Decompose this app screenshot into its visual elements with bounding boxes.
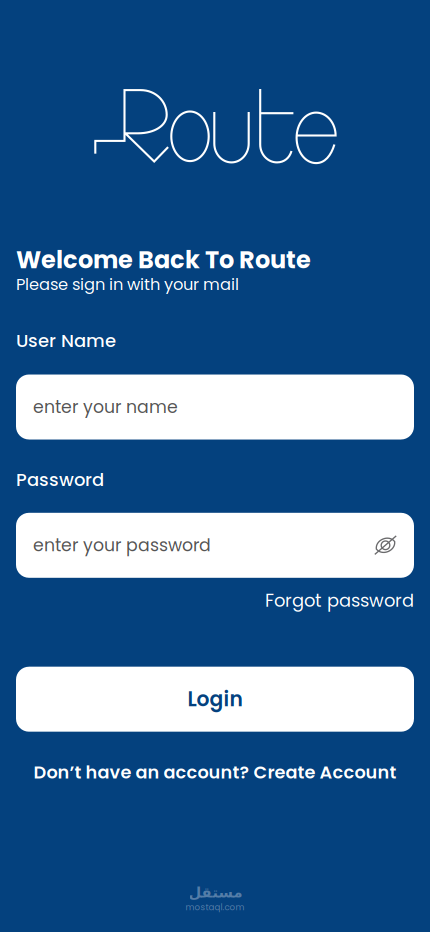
staticText: Don’t have an account? Create Account <box>33 760 396 785</box>
staticText: Login <box>187 685 242 713</box>
staticText: enter your password <box>33 533 211 557</box>
staticText: mostaql.com <box>185 901 244 913</box>
staticText: Please sign in with your mail <box>16 273 239 296</box>
staticText: User Name <box>16 328 116 353</box>
staticText: Welcome Back To Route <box>16 243 311 277</box>
staticText: enter your name <box>33 395 178 419</box>
staticText: Password <box>16 467 104 492</box>
button[interactable]: Forgot password <box>16 588 414 613</box>
button[interactable]: Show password <box>373 534 398 557</box>
button[interactable]: Don’t have an account? Create Account <box>16 760 414 785</box>
staticText: مستقل <box>188 884 242 901</box>
button[interactable]: Login <box>16 667 414 732</box>
staticText: Forgot password <box>265 588 414 613</box>
